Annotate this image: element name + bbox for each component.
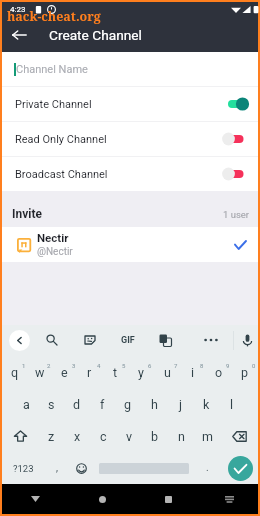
staticText: b: [151, 429, 159, 444]
staticText: a: [23, 397, 30, 412]
staticText: q: [11, 365, 19, 380]
button[interactable]: Shift: [2, 420, 39, 452]
staticText: w: [35, 365, 45, 380]
button[interactable]: .: [196, 452, 218, 484]
staticText: x: [74, 429, 81, 444]
button[interactable]: Switch keyboard: [201, 484, 258, 514]
button[interactable]: t: [102, 356, 128, 388]
staticText: ?123: [13, 463, 34, 474]
staticText: m: [202, 429, 213, 444]
button[interactable]: g: [115, 388, 141, 420]
staticText: 4:23: [10, 5, 26, 14]
button[interactable]: r: [77, 356, 102, 388]
button[interactable]: GIF: [115, 330, 140, 350]
button[interactable]: More options: [201, 330, 221, 350]
button[interactable]: Voice input: [237, 330, 257, 350]
button[interactable]: f: [89, 388, 115, 420]
staticText: t: [113, 365, 118, 380]
staticText: hack-cheat.org: [7, 8, 101, 25]
button[interactable]: i: [180, 356, 206, 388]
staticText: p: [241, 365, 249, 380]
staticText: Broadcast Channel: [15, 168, 108, 181]
staticText: ,: [56, 462, 58, 474]
staticText: Read Only Channel: [15, 133, 107, 146]
button[interactable]: q: [2, 356, 27, 388]
staticText: Nectir: [37, 231, 69, 244]
button[interactable]: b: [142, 420, 168, 452]
button[interactable]: Private Channel: [2, 86, 258, 121]
staticText: i: [191, 365, 195, 380]
button[interactable]: Backspace: [220, 420, 258, 452]
staticText: s: [48, 397, 55, 412]
button[interactable]: Enter: [228, 456, 253, 481]
button[interactable]: Back: [2, 18, 36, 52]
button[interactable]: h: [141, 388, 167, 420]
button[interactable]: Recent apps: [135, 484, 201, 514]
button[interactable]: j: [167, 388, 193, 420]
staticText: 8: [200, 362, 204, 369]
staticText: 0: [252, 362, 256, 369]
button[interactable]: Emoji: [70, 452, 92, 484]
button[interactable]: Search: [42, 330, 62, 350]
staticText: n: [178, 429, 185, 444]
button[interactable]: e: [52, 356, 77, 388]
button[interactable]: v: [116, 420, 142, 452]
staticText: j: [179, 397, 182, 412]
staticText: 7: [174, 362, 178, 369]
staticText: c: [100, 429, 107, 444]
button[interactable]: l: [219, 388, 245, 420]
staticText: 1: [22, 362, 26, 369]
staticText: 2: [47, 362, 51, 369]
staticText: h: [151, 397, 158, 412]
button[interactable]: Nectir: [2, 227, 258, 262]
button[interactable]: k: [193, 388, 219, 420]
staticText: @Nectir: [37, 246, 73, 258]
staticText: v: [126, 429, 133, 444]
staticText: f: [100, 397, 105, 412]
button[interactable]: p: [232, 356, 258, 388]
button[interactable]: z: [39, 420, 64, 452]
button[interactable]: a: [14, 388, 39, 420]
staticText: o: [215, 365, 223, 380]
button[interactable]: x: [64, 420, 90, 452]
button[interactable]: Selected: [228, 233, 252, 257]
button[interactable]: ,: [46, 452, 68, 484]
staticText: .: [206, 462, 209, 474]
button[interactable]: c: [90, 420, 116, 452]
button[interactable]: o: [206, 356, 232, 388]
button[interactable]: Home: [69, 484, 135, 514]
button[interactable]: s: [39, 388, 64, 420]
staticText: 9: [226, 362, 230, 369]
staticText: d: [73, 397, 81, 412]
staticText: k: [203, 397, 210, 412]
staticText: 4: [97, 362, 101, 369]
button[interactable]: u: [154, 356, 180, 388]
staticText: Invite: [12, 207, 43, 221]
staticText: 3: [72, 362, 76, 369]
staticText: Private Channel: [15, 98, 92, 111]
staticText: l: [230, 397, 234, 412]
staticText: z: [48, 429, 55, 444]
button[interactable]: Back: [2, 484, 69, 514]
staticText: g: [124, 397, 132, 412]
button[interactable]: w: [27, 356, 52, 388]
button[interactable]: Channel Name: [2, 52, 258, 86]
staticText: Create Channel: [49, 27, 142, 43]
button[interactable]: ?123: [4, 452, 42, 484]
button[interactable]: Broadcast Channel: [2, 156, 258, 191]
staticText: y: [138, 365, 144, 380]
button[interactable]: y: [128, 356, 154, 388]
staticText: Channel Name: [16, 63, 88, 76]
button[interactable]: Translate: [155, 330, 175, 350]
staticText: u: [164, 365, 171, 380]
staticText: GIF: [121, 335, 135, 346]
button[interactable]: d: [64, 388, 89, 420]
staticText: 5: [122, 362, 126, 369]
button[interactable]: Space: [94, 452, 194, 484]
button[interactable]: Collapse toolbar: [9, 330, 30, 351]
button[interactable]: Read Only Channel: [2, 121, 258, 156]
button[interactable]: m: [194, 420, 220, 452]
staticText: 1 user: [223, 209, 250, 220]
button[interactable]: Stickers: [80, 330, 100, 350]
button[interactable]: n: [168, 420, 194, 452]
